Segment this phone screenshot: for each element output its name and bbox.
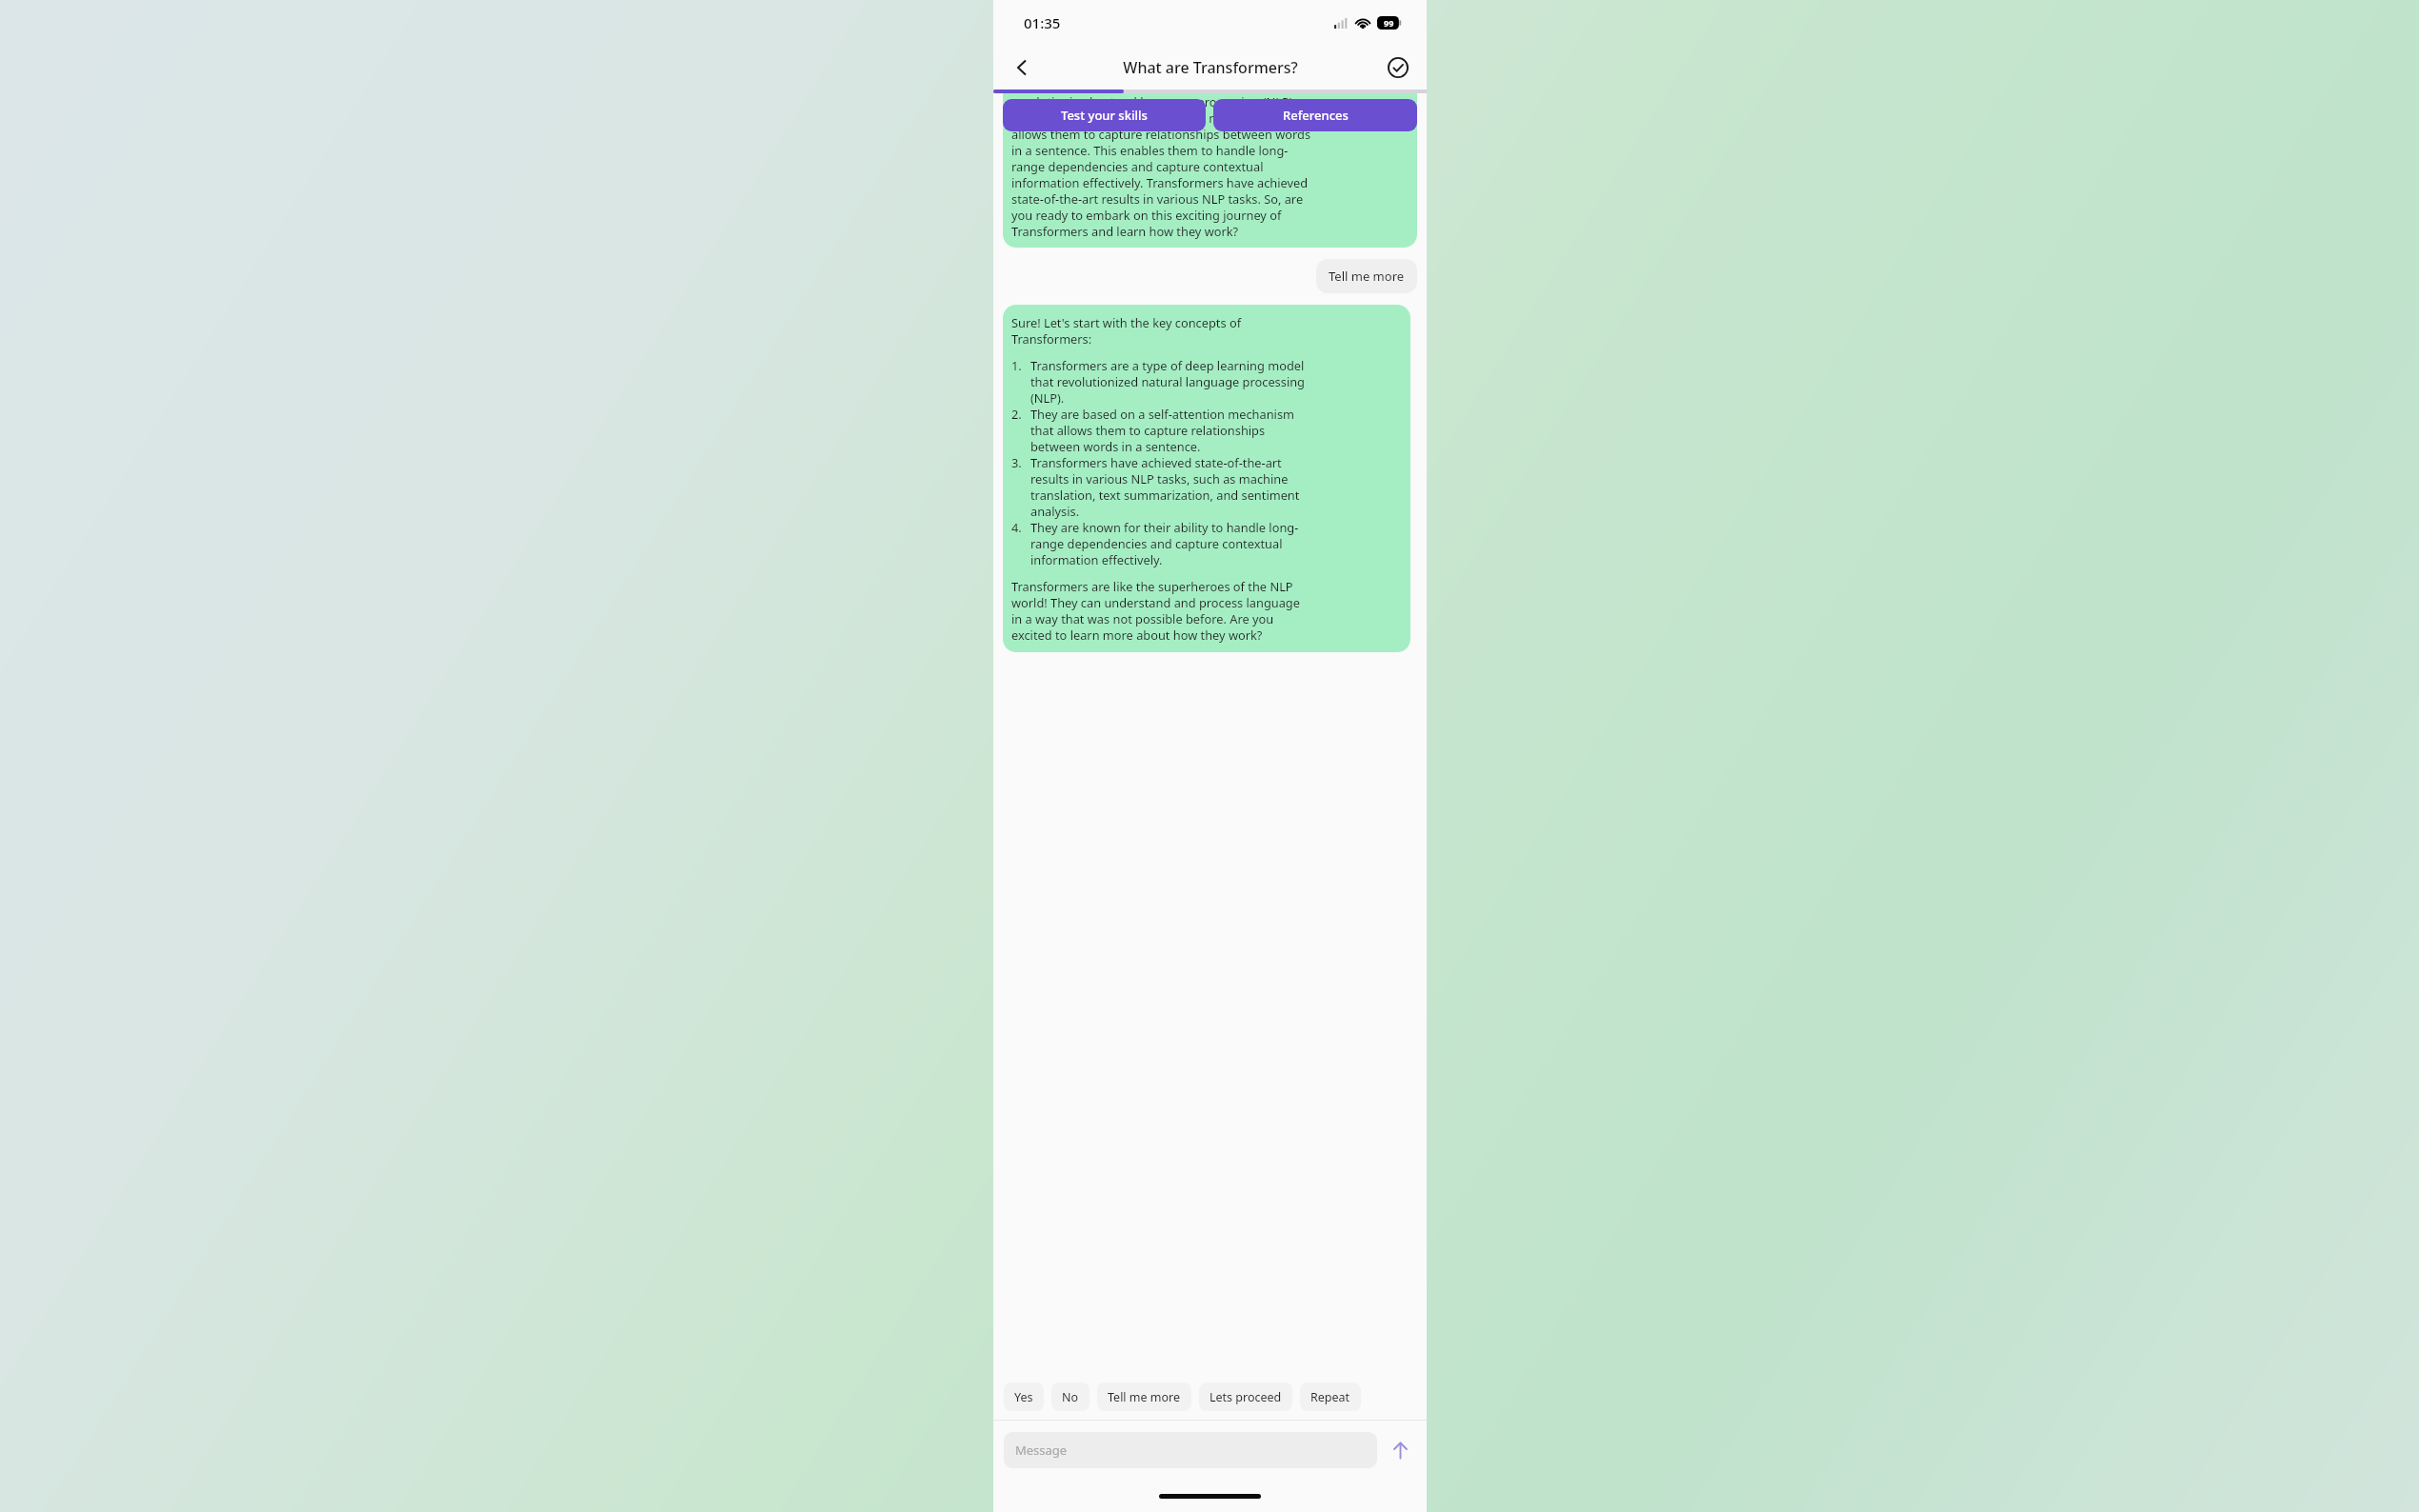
- staticText: Sure! Let's start with the key concepts …: [1011, 314, 1242, 330]
- staticText: information effectively.: [1030, 551, 1163, 567]
- staticText: (NLP).: [1030, 389, 1065, 406]
- staticText: translation, text summarization, and sen…: [1030, 487, 1300, 503]
- button[interactable]: Tell me more: [1097, 1383, 1191, 1411]
- button[interactable]: Back: [1003, 49, 1041, 87]
- staticText: that revolutionized natural language pro…: [1030, 373, 1305, 389]
- staticText: Transformers are a type of deep learning…: [1030, 357, 1305, 373]
- staticText: References: [1283, 107, 1349, 124]
- button[interactable]: Repeat: [1300, 1383, 1361, 1411]
- staticText: Transformers have achieved state-of-the-…: [1030, 454, 1282, 470]
- button[interactable]: Mark complete: [1379, 49, 1417, 87]
- staticText: 1.: [1011, 357, 1022, 373]
- staticText: Repeat: [1310, 1389, 1350, 1405]
- button[interactable]: Message: [1004, 1432, 1377, 1468]
- staticText: Transformers and learn how they work?: [1011, 223, 1239, 239]
- staticText: that allows them to capture relationship…: [1030, 422, 1266, 438]
- staticText: results in various NLP tasks, such as ma…: [1030, 470, 1289, 487]
- staticText: range dependencies and capture contextua…: [1011, 158, 1264, 174]
- staticText: range dependencies and capture contextua…: [1030, 535, 1283, 551]
- staticText: 4.: [1011, 519, 1022, 535]
- staticText: No: [1062, 1389, 1079, 1405]
- staticText: analysis.: [1030, 503, 1080, 519]
- staticText: information effectively. Transformers ha…: [1011, 174, 1309, 190]
- button[interactable]: Send: [1383, 1433, 1417, 1467]
- button[interactable]: Tell me more: [1316, 259, 1417, 293]
- staticText: allows them to capture relationships bet…: [1011, 126, 1311, 142]
- staticText: Tell me more: [1329, 268, 1405, 285]
- staticText: 99: [1384, 17, 1394, 29]
- staticText: What are Transformers?: [1123, 57, 1298, 78]
- staticText: 2.: [1011, 406, 1022, 422]
- button[interactable]: Lets proceed: [1199, 1383, 1292, 1411]
- button[interactable]: No: [1051, 1383, 1090, 1411]
- staticText: Test your skills: [1061, 107, 1148, 124]
- staticText: 3.: [1011, 454, 1022, 470]
- button[interactable]: Test your skills: [1003, 99, 1206, 131]
- staticText: Lets proceed: [1209, 1389, 1282, 1405]
- staticText: state-of-the-art results in various NLP …: [1011, 190, 1304, 207]
- staticText: They are based on a self-attention mecha…: [1030, 406, 1295, 422]
- staticText: Tell me more: [1108, 1389, 1181, 1405]
- staticText: in a way that was not possible before. A…: [1011, 610, 1274, 627]
- button[interactable]: References: [1213, 99, 1417, 131]
- staticText: They are based on a self-attention mecha…: [1011, 109, 1302, 126]
- staticText: They are known for their ability to hand…: [1030, 519, 1299, 535]
- staticText: Message: [1015, 1442, 1068, 1459]
- staticText: world! They can understand and process l…: [1011, 594, 1300, 610]
- staticText: between words in a sentence.: [1030, 438, 1201, 454]
- staticText: Transformers:: [1011, 330, 1092, 347]
- staticText: Transformers are like the superheroes of…: [1011, 578, 1293, 594]
- staticText: you ready to embark on this exciting jou…: [1011, 207, 1282, 223]
- staticText: in a sentence. This enables them to hand…: [1011, 142, 1289, 158]
- staticText: revolutionized natural language processi…: [1011, 93, 1296, 109]
- button[interactable]: Yes: [1004, 1383, 1044, 1411]
- staticText: Yes: [1014, 1389, 1033, 1405]
- staticText: excited to learn more about how they wor…: [1011, 627, 1263, 643]
- staticText: 01:35: [1024, 13, 1061, 32]
